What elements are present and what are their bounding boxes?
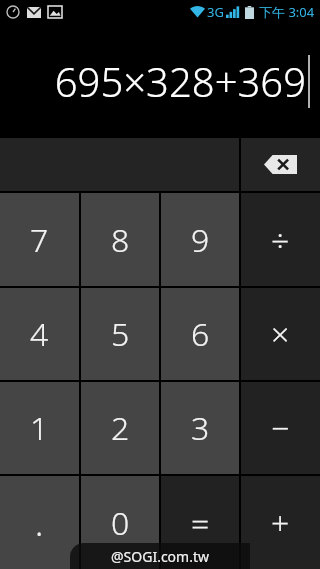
button[interactable]: −: [241, 382, 320, 474]
staticText: .: [35, 500, 44, 546]
staticText: 8: [111, 218, 130, 262]
staticText: 4: [30, 312, 49, 356]
button[interactable]: 3: [161, 382, 239, 474]
staticText: 5: [111, 312, 130, 356]
staticText: 7: [30, 218, 49, 262]
button[interactable]: 6: [161, 288, 239, 380]
button[interactable]: 4: [0, 288, 79, 380]
button[interactable]: 0: [81, 476, 159, 569]
staticText: 6: [191, 312, 210, 356]
staticText: ×: [271, 312, 290, 356]
button[interactable]: 7: [0, 193, 79, 286]
staticText: @SOGI.com.tw: [111, 547, 209, 566]
staticText: +: [271, 501, 290, 545]
staticText: 695×328+369: [54, 54, 306, 108]
button[interactable]: Backspace: [241, 138, 320, 191]
button[interactable]: +: [241, 476, 320, 569]
staticText: 9: [191, 218, 210, 262]
staticText: 0: [111, 501, 130, 545]
button[interactable]: 8: [81, 193, 159, 286]
button[interactable]: 9: [161, 193, 239, 286]
staticText: 2: [111, 406, 130, 450]
staticText: 3: [191, 406, 210, 450]
staticText: 3G: [207, 3, 224, 21]
button[interactable]: 2: [81, 382, 159, 474]
staticText: =: [191, 501, 210, 545]
staticText: −: [271, 406, 290, 450]
button[interactable]: =: [161, 476, 239, 569]
button[interactable]: 1: [0, 382, 79, 474]
button[interactable]: ÷: [241, 193, 320, 286]
button[interactable]: 5: [81, 288, 159, 380]
staticText: 下午 3:04: [259, 3, 315, 21]
button[interactable]: ×: [241, 288, 320, 380]
staticText: 1: [30, 406, 49, 450]
button[interactable]: .: [0, 476, 79, 569]
staticText: ÷: [271, 218, 290, 262]
